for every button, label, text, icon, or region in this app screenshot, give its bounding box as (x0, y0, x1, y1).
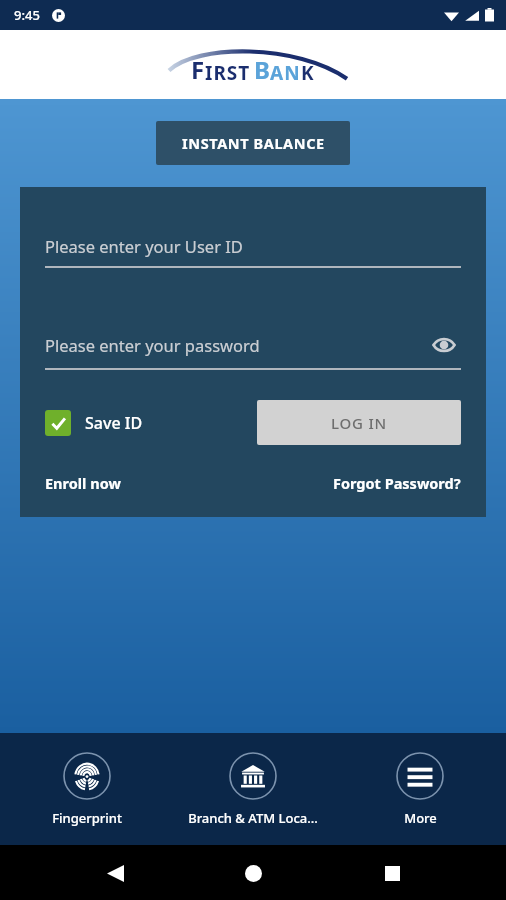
staticText: LOG IN (331, 413, 388, 433)
button[interactable]: Branch and ATM locator (173, 746, 333, 833)
button[interactable]: Back (91, 849, 139, 897)
staticText: Save ID (85, 412, 143, 434)
staticText: F (191, 53, 205, 86)
button[interactable]: LOG IN (257, 400, 461, 445)
button[interactable]: Home (229, 849, 277, 897)
staticText: More (404, 809, 437, 827)
button[interactable]: INSTANT BALANCE (156, 121, 350, 165)
staticText: Branch & ATM Loca... (188, 809, 318, 827)
staticText: Fingerprint (52, 809, 122, 827)
staticText: Please enter your User ID (45, 235, 243, 257)
staticText: 9:45 (14, 6, 40, 24)
button[interactable]: Enroll now (45, 473, 121, 493)
button[interactable]: Fingerprint login (7, 746, 167, 833)
button[interactable]: Please enter your password (45, 334, 427, 356)
button[interactable]: Forgot Password? (333, 473, 461, 493)
other: Fingerprint login (63, 752, 111, 800)
staticText: Please enter your password (45, 334, 260, 356)
staticText: Enroll now (45, 473, 121, 493)
button[interactable]: Recent apps (368, 849, 416, 897)
staticText: Forgot Password? (333, 473, 461, 493)
other: More (396, 752, 444, 800)
staticText: IRST (205, 60, 251, 86)
staticText: INSTANT BALANCE (182, 133, 325, 153)
button[interactable]: Show password (427, 328, 461, 362)
staticText: K (301, 60, 315, 86)
staticText: AN (270, 60, 301, 86)
button[interactable]: Please enter your User ID (45, 235, 461, 268)
button[interactable]: More (340, 746, 500, 833)
button[interactable]: Save ID (45, 410, 143, 436)
other: Branch and ATM locator (229, 752, 277, 800)
staticText: B (254, 53, 270, 86)
